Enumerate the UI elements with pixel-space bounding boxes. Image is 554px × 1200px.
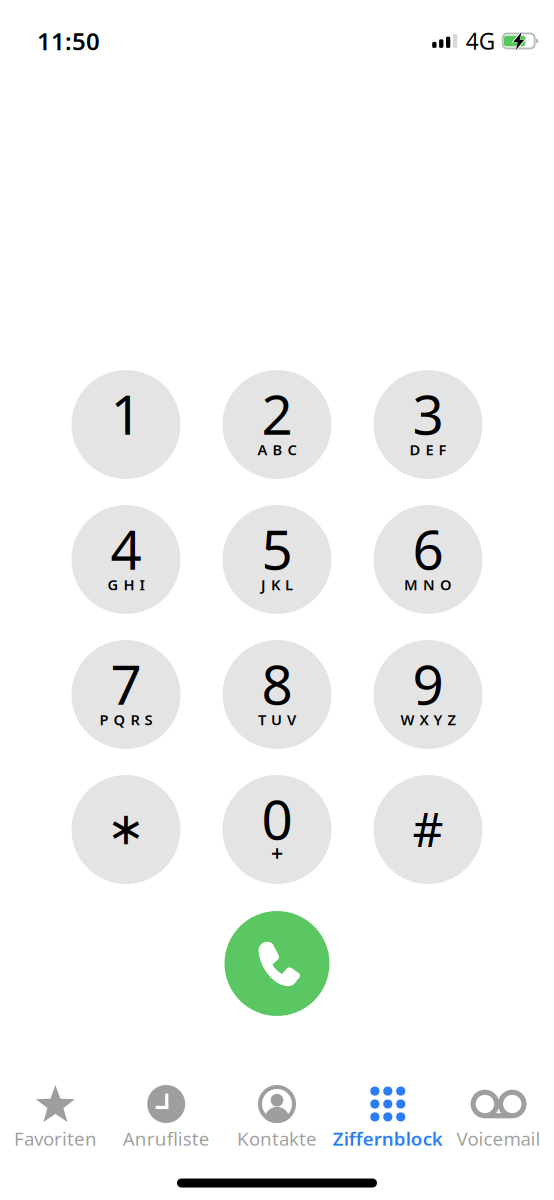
staticText: Voicemail: [457, 1126, 541, 1151]
staticText: 1: [110, 377, 141, 450]
staticText: M N O: [404, 575, 452, 594]
staticText: 11:50: [37, 25, 100, 57]
staticText: 9: [412, 647, 443, 720]
staticText: 4: [110, 512, 141, 585]
staticText: 4G: [466, 26, 496, 56]
staticText: +: [271, 838, 283, 867]
staticText: 5: [261, 512, 292, 585]
staticText: 3: [412, 377, 443, 450]
button[interactable]: 4: [71, 505, 180, 614]
staticText: Ziffernblock: [333, 1126, 443, 1151]
staticText: G H I: [107, 575, 144, 594]
staticText: #: [412, 797, 443, 860]
staticText: ∗: [107, 803, 145, 854]
button[interactable]: Kontakte: [222, 1074, 332, 1166]
staticText: Anrufliste: [123, 1126, 210, 1151]
button[interactable]: 2: [222, 370, 331, 479]
staticText: Favoriten: [14, 1126, 97, 1151]
staticText: 2: [261, 377, 292, 450]
staticText: A B C: [257, 440, 296, 459]
button[interactable]: Voicemail: [443, 1074, 554, 1166]
button[interactable]: 8: [222, 640, 331, 749]
button[interactable]: ∗: [71, 775, 180, 884]
button[interactable]: 6: [373, 505, 482, 614]
button[interactable]: 3: [373, 370, 482, 479]
staticText: 7: [110, 647, 141, 720]
button[interactable]: #: [373, 775, 482, 884]
button[interactable]: Ziffernblock: [332, 1074, 443, 1166]
button[interactable]: 7: [71, 640, 180, 749]
staticText: T U V: [258, 710, 296, 729]
staticText: 0: [261, 782, 292, 855]
button[interactable]: Favoriten: [0, 1074, 111, 1166]
staticText: W X Y Z: [400, 710, 455, 729]
button[interactable]: Anrufliste: [111, 1074, 222, 1166]
staticText: 6: [412, 512, 443, 585]
button[interactable]: Anrufen: [224, 911, 329, 1016]
staticText: J K L: [261, 575, 293, 594]
button[interactable]: 9: [373, 640, 482, 749]
button[interactable]: 1: [71, 370, 180, 479]
button[interactable]: 5: [222, 505, 331, 614]
staticText: 8: [261, 647, 292, 720]
staticText: Kontakte: [237, 1126, 317, 1151]
staticText: P Q R S: [99, 710, 152, 729]
staticText: D E F: [409, 440, 446, 459]
button[interactable]: 0: [222, 775, 331, 884]
